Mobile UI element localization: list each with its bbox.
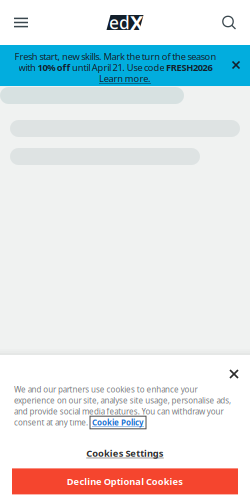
staticText: Learn more. [99, 72, 151, 85]
button[interactable]: Cookies Settings [0, 428, 250, 468]
button[interactable]: edX home [106, 15, 143, 30]
staticText: experience on our site, analyse site usa… [14, 395, 231, 406]
staticText: Decline Optional Cookies [67, 475, 183, 488]
staticText: ed [109, 11, 130, 34]
button[interactable]: Close cookie banner [224, 364, 244, 384]
staticText: X [130, 9, 143, 36]
button[interactable]: Menu [6, 7, 36, 37]
staticText: Cookie Policy [92, 417, 144, 428]
staticText: Cookies Settings [86, 447, 164, 459]
button[interactable]: Decline Optional Cookies [12, 468, 238, 494]
button[interactable]: Search [214, 7, 244, 37]
button[interactable]: Cookie Policy [90, 416, 146, 429]
staticText: and provide social media features. You c… [14, 406, 223, 417]
button[interactable]: Learn more. [99, 73, 151, 84]
staticText: consent at any time. [14, 417, 90, 428]
staticText: Fresh start, new skills. Mark the turn o… [15, 50, 216, 63]
staticText: with 10% off until April 21. Use code FR… [19, 61, 212, 74]
button[interactable]: Close promotion [227, 56, 245, 74]
staticText: We and our partners use cookies to enhan… [14, 384, 197, 395]
